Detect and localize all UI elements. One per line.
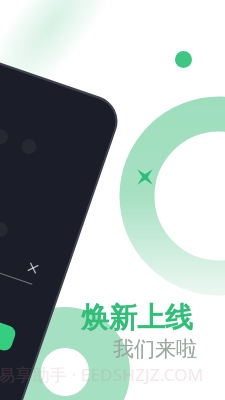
staticText: 焕新上线 [81,300,193,335]
staticText: 我们来啦 [113,336,197,362]
staticText: 易享助手 · EEDSHZJZ.COM [0,363,204,386]
